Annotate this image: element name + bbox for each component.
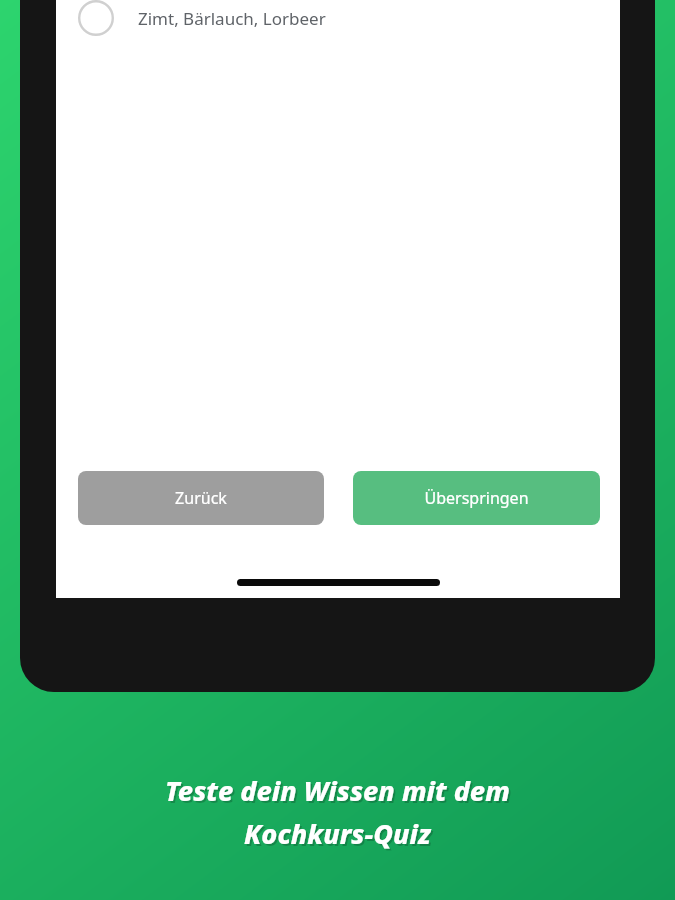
staticText: Teste dein Wissen mit dem Kochkurs-Quiz [59, 774, 620, 870]
staticText: Teste dein Wissen mit dem Kochkurs-Quiz [57, 772, 618, 868]
button[interactable]: Überspringen [353, 471, 600, 525]
other: Home indicator [237, 579, 440, 586]
staticText: Überspringen [424, 487, 529, 509]
button[interactable]: Zurück [78, 471, 324, 525]
button[interactable]: Zimt, Bärlauch, Lorbeer [56, 0, 620, 40]
staticText: Zimt, Bärlauch, Lorbeer [138, 7, 326, 30]
staticText: Zurück [175, 487, 227, 509]
